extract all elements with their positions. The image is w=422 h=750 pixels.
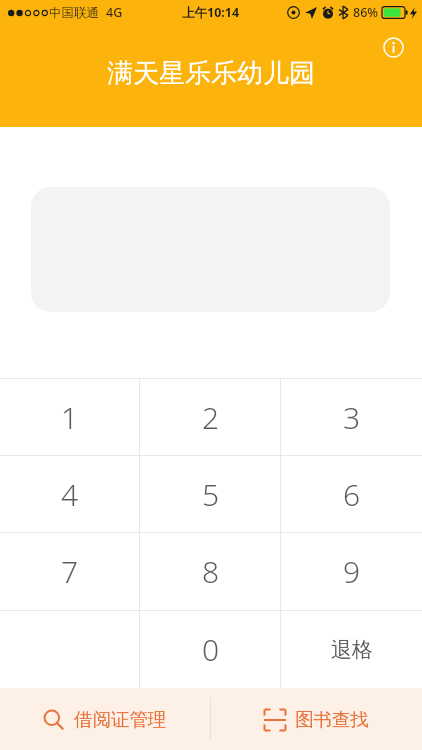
staticText: 满天星乐乐幼儿园: [107, 57, 315, 90]
button[interactable]: 7: [0, 533, 140, 610]
staticText: 86%: [353, 4, 378, 21]
button[interactable]: 9: [281, 533, 422, 610]
button[interactable]: 借阅证管理: [0, 688, 210, 750]
staticText: 8: [202, 551, 220, 592]
staticText: 2: [202, 397, 220, 438]
staticText: 退格: [331, 637, 373, 663]
button[interactable]: 5: [140, 456, 281, 532]
button[interactable]: 2: [140, 379, 281, 455]
staticText: 7: [61, 551, 79, 592]
button[interactable]: 8: [140, 533, 281, 610]
staticText: 借阅证管理: [74, 708, 167, 731]
staticText: 9: [343, 551, 361, 592]
button[interactable]: 0: [140, 611, 281, 688]
button[interactable]: Information: [378, 32, 408, 62]
button[interactable]: 图书查找: [211, 688, 422, 750]
staticText: 5: [202, 474, 220, 515]
staticText: 图书查找: [295, 708, 369, 731]
button[interactable]: 1: [0, 379, 140, 455]
button[interactable]: 退格: [281, 611, 422, 688]
staticText: 4G: [106, 4, 123, 21]
staticText: 6: [343, 474, 361, 515]
staticText: 0: [202, 629, 220, 670]
button[interactable]: 3: [281, 379, 422, 455]
staticText: 中国联通: [49, 5, 99, 21]
staticText: 3: [343, 397, 361, 438]
button[interactable]: 4: [0, 456, 140, 532]
staticText: 4: [61, 474, 79, 515]
staticText: 上午10:14: [182, 4, 240, 21]
staticText: 1: [61, 397, 79, 438]
button[interactable]: 6: [281, 456, 422, 532]
